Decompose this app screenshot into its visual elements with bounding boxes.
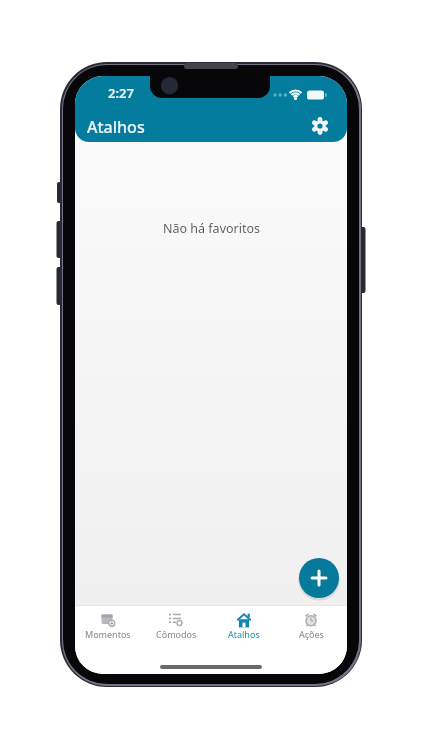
- staticText: 2:27: [108, 84, 134, 102]
- staticText: Momentos: [85, 628, 131, 640]
- button[interactable]: Momentos: [75, 606, 142, 666]
- staticText: Atalhos: [87, 116, 145, 138]
- button[interactable]: Atalhos: [210, 606, 278, 666]
- staticText: Ações: [299, 628, 324, 640]
- button[interactable]: Cômodos: [142, 606, 210, 666]
- staticText: Não há favoritos: [163, 220, 260, 237]
- staticText: Cômodos: [156, 628, 197, 640]
- button[interactable]: [299, 558, 339, 598]
- staticText: Atalhos: [228, 628, 260, 640]
- button[interactable]: [308, 114, 332, 138]
- button[interactable]: Ações: [278, 606, 344, 666]
